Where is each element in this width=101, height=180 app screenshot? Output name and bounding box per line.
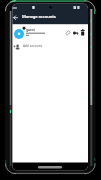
staticText: guest bbox=[26, 28, 35, 32]
button[interactable] bbox=[12, 42, 88, 53]
button[interactable] bbox=[12, 26, 62, 42]
staticText: Add account bbox=[23, 44, 42, 48]
button[interactable] bbox=[64, 29, 71, 37]
button[interactable] bbox=[12, 13, 21, 22]
staticText: Manage accounts bbox=[22, 14, 56, 20]
button[interactable] bbox=[79, 29, 86, 37]
button[interactable] bbox=[72, 29, 79, 37]
